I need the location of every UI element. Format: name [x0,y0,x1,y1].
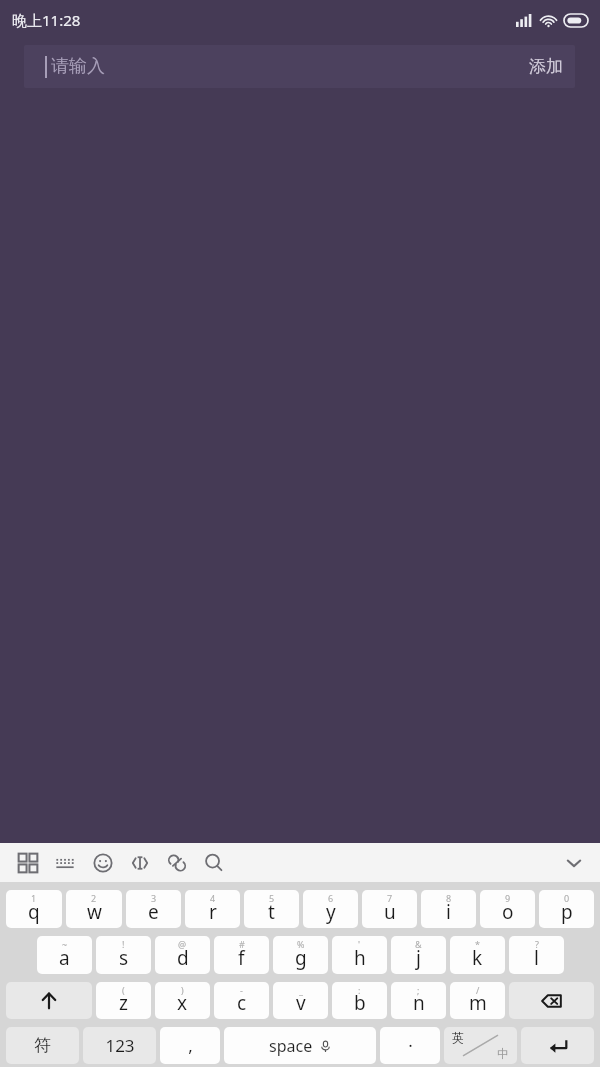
button[interactable]: _ [273,982,328,1019]
staticText: # [239,938,245,950]
staticText: p [561,899,573,925]
button[interactable]: ~ [37,936,92,974]
staticText: h [354,945,366,971]
button[interactable]: * [450,936,505,974]
button[interactable]: 123 [83,1027,156,1064]
staticText: 中 [497,1046,509,1061]
button[interactable]: 8 [421,890,476,928]
button[interactable]: , [160,1027,220,1064]
staticText: ? [535,938,539,950]
staticText: 8 [446,892,452,904]
staticText: r [209,899,217,925]
staticText: a [59,945,70,971]
button[interactable]: 4 [185,890,240,928]
staticText: b [354,990,366,1016]
button[interactable]: Emoji [87,847,119,879]
button[interactable]: ! [96,936,151,974]
button[interactable]: 7 [362,890,417,928]
button[interactable]: Keyboard [49,847,81,879]
button[interactable]: Enter [521,1027,594,1064]
staticText: ( [122,984,125,996]
button[interactable]: - [214,982,269,1019]
staticText: m [469,990,487,1016]
staticText: s [119,945,129,971]
button[interactable]: # [214,936,269,974]
button[interactable]: 5 [244,890,299,928]
button[interactable]: 请输入 [24,45,575,88]
staticText: n [413,990,425,1016]
staticText: % [297,938,305,950]
button[interactable]: % [273,936,328,974]
button[interactable]: Shift [6,982,92,1019]
button[interactable]: 添加 [517,50,575,83]
button[interactable]: @ [155,936,210,974]
staticText: ! [122,938,125,950]
staticText: j [416,945,421,971]
staticText: 4 [210,892,216,904]
button[interactable]: Cursor [124,847,156,879]
staticText: 2 [91,892,97,904]
staticText: e [148,899,159,925]
staticText: ~ [62,938,68,950]
button[interactable]: ) [155,982,210,1019]
staticText: @ [178,938,187,950]
staticText: 123 [105,1034,135,1057]
button[interactable]: 1 [6,890,62,928]
button[interactable]: 3 [126,890,181,928]
button[interactable]: · [380,1027,440,1064]
button[interactable]: 符 [6,1027,79,1064]
button[interactable]: 0 [539,890,594,928]
button[interactable]: / [450,982,505,1019]
button[interactable]: Grid [12,847,44,879]
staticText: z [119,990,128,1016]
staticText: _ [299,984,303,996]
staticText: & [415,938,422,950]
staticText: d [177,945,189,971]
staticText: 晚上11:28 [12,10,81,30]
button[interactable]: ; [391,982,446,1019]
staticText: 1 [31,892,37,904]
button[interactable]: Backspace [509,982,594,1019]
button[interactable]: Hide keyboard [558,847,590,879]
staticText: - [240,984,243,996]
button[interactable]: 9 [480,890,535,928]
staticText: o [502,899,514,925]
staticText: x [177,990,188,1016]
staticText: y [326,899,336,925]
staticText: , [188,1034,193,1057]
staticText: 6 [328,892,334,904]
staticText: v [296,990,306,1016]
staticText: 5 [269,892,275,904]
staticText: f [238,945,245,971]
button[interactable]: Clipboard [161,847,193,879]
staticText: 添加 [529,56,563,77]
staticText: 符 [34,1035,51,1056]
staticText: l [534,945,539,971]
button[interactable]: 2 [66,890,122,928]
button[interactable]: & [391,936,446,974]
button[interactable]: ( [96,982,151,1019]
staticText: w [87,899,102,925]
button[interactable]: Search [198,847,230,879]
button[interactable]: : [332,982,387,1019]
staticText: q [28,899,40,925]
staticText: / [476,984,480,996]
button[interactable]: Switch language [444,1027,517,1064]
button[interactable]: ' [332,936,387,974]
staticText: g [295,945,307,971]
staticText: 3 [151,892,157,904]
staticText: space [269,1035,313,1057]
button[interactable]: 6 [303,890,358,928]
staticText: : [358,984,361,996]
button[interactable]: space [224,1027,376,1064]
staticText: · [408,1034,413,1057]
staticText: 请输入 [51,55,105,78]
staticText: t [268,899,275,925]
staticText: c [237,990,247,1016]
staticText: ) [181,984,184,996]
staticText: ' [358,938,361,950]
button[interactable]: ? [509,936,564,974]
staticText: u [384,899,396,925]
staticText: 英 [452,1030,464,1045]
staticText: 0 [564,892,570,904]
